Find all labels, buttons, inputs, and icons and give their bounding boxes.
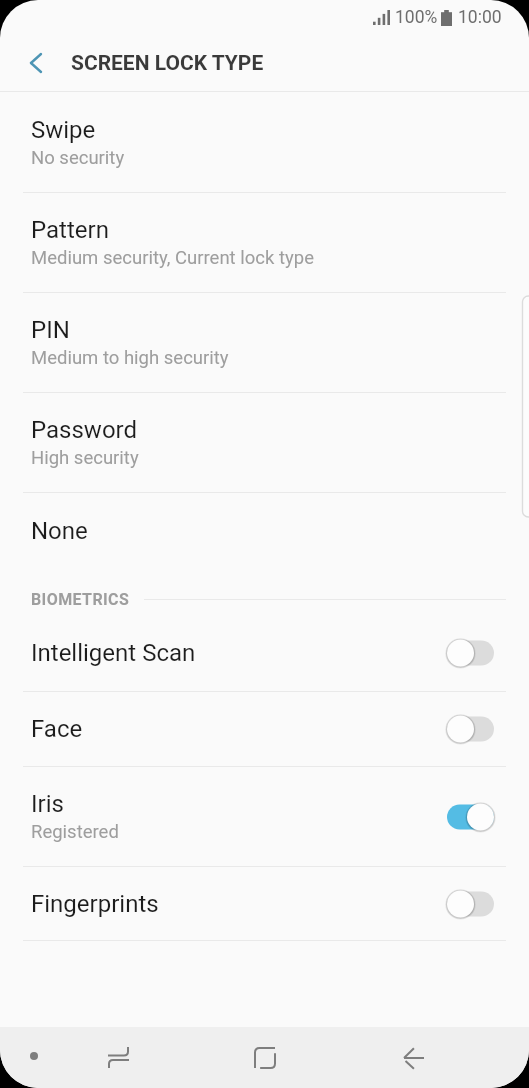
staticText: None [31, 517, 88, 545]
staticText: Medium security, Current lock type [31, 247, 314, 269]
staticText: 10:00 [458, 7, 502, 28]
button[interactable]: Navigate up [12, 39, 59, 86]
button[interactable]: Fingerprints [0, 867, 529, 941]
button[interactable]: Back [381, 1027, 445, 1088]
button[interactable]: Iris [0, 767, 529, 866]
staticText: 100% [395, 7, 438, 28]
staticText: Pattern [31, 216, 109, 244]
staticText: Medium to high security [31, 347, 229, 369]
staticText: Intelligent Scan [31, 639, 196, 667]
staticText: Fingerprints [31, 890, 159, 918]
button[interactable]: Recents [86, 1027, 150, 1088]
button[interactable]: Off [447, 715, 494, 743]
staticText: BIOMETRICS [31, 590, 130, 609]
staticText: No security [31, 147, 125, 169]
button[interactable]: Swipe [0, 92, 529, 192]
button[interactable]: On [447, 803, 494, 831]
staticText: Registered [31, 821, 119, 843]
button[interactable]: Face [0, 692, 529, 766]
staticText: Password [31, 416, 138, 444]
staticText: PIN [31, 316, 70, 344]
button[interactable]: Home [233, 1027, 297, 1088]
button[interactable]: Pattern [0, 193, 529, 292]
staticText: Iris [31, 790, 64, 818]
staticText: High security [31, 447, 139, 469]
button[interactable]: PIN [0, 293, 529, 392]
staticText: Face [31, 715, 83, 743]
button[interactable]: Off [447, 890, 494, 918]
button[interactable]: Intelligent Scan [0, 615, 529, 691]
staticText: Swipe [31, 116, 96, 144]
button[interactable]: Off [447, 639, 494, 667]
button[interactable]: None [0, 493, 529, 569]
button[interactable]: Password [0, 393, 529, 492]
staticText: SCREEN LOCK TYPE [71, 51, 264, 76]
